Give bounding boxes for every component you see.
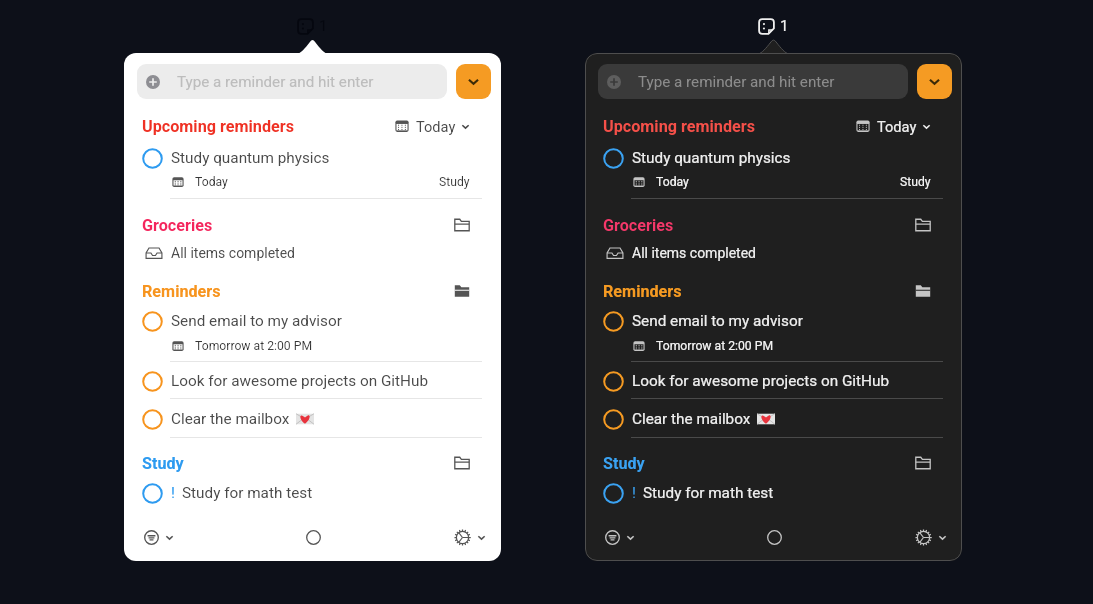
staticText: Today [656,175,689,189]
staticText: Today [877,118,917,135]
button[interactable]: Send email to my advisor [124,308,501,334]
staticText: Groceries [142,216,213,235]
button[interactable]: Show more options [917,64,952,99]
button[interactable]: Add reminder [300,524,326,550]
button[interactable]: Today [395,113,482,139]
button[interactable]: Study quantum physics [585,145,962,171]
staticText: Look for awesome projects on GitHub [171,372,428,390]
staticText: Send email to my advisor [171,312,342,330]
staticText: Reminders [142,282,221,301]
button[interactable]: Sort and filter [144,524,174,550]
staticText: Study [603,454,645,473]
staticText: 1 [780,17,789,35]
button[interactable]: Send email to my advisor [585,308,962,334]
button[interactable]: Clear the mailbox [124,406,501,432]
staticText: Send email to my advisor [632,312,803,330]
button[interactable]: Open Reminders list [448,278,476,304]
button[interactable]: Sort and filter [605,524,635,550]
staticText: Type a reminder and hit enter [177,73,374,91]
staticText: Study [900,175,931,189]
staticText: Study for math test [182,484,313,502]
button[interactable]: Type a reminder and hit enter [598,64,908,99]
button[interactable]: Open Groceries list [448,212,476,238]
staticText: Look for awesome projects on GitHub [632,372,889,390]
staticText: Tomorrow at 2:00 PM [656,339,774,353]
button[interactable]: Open Study list [909,450,937,476]
button[interactable]: Today [856,113,943,139]
button[interactable]: Type a reminder and hit enter [137,64,447,99]
staticText: Study quantum physics [632,149,791,167]
staticText: Study [142,454,184,473]
staticText: ! [632,484,636,502]
staticText: Today [416,118,456,135]
staticText: Groceries [603,216,674,235]
staticText: Type a reminder and hit enter [638,73,835,91]
button[interactable]: Settings [454,524,486,550]
staticText: All items completed [632,245,756,261]
staticText: Clear the mailbox [171,410,290,428]
button[interactable]: Open Groceries list [909,212,937,238]
button[interactable]: Open Reminders list [909,278,937,304]
staticText: ! [171,484,175,502]
staticText: Study for math test [643,484,774,502]
button[interactable]: Settings [915,524,947,550]
staticText: Study quantum physics [171,149,330,167]
button[interactable]: Look for awesome projects on GitHub [585,368,962,394]
button[interactable]: Open Study list [448,450,476,476]
staticText: All items completed [171,245,295,261]
staticText: Upcoming reminders [603,117,755,136]
button[interactable]: Show more options [456,64,491,99]
button[interactable]: Add reminder [761,524,787,550]
staticText: Upcoming reminders [142,117,294,136]
button[interactable]: ! [585,480,962,506]
button[interactable]: ! [124,480,501,506]
staticText: Today [195,175,228,189]
button[interactable]: Look for awesome projects on GitHub [124,368,501,394]
staticText: Reminders [603,282,682,301]
button[interactable]: Reminders menu bar item [758,17,789,35]
button[interactable]: Study quantum physics [124,145,501,171]
staticText: Tomorrow at 2:00 PM [195,339,313,353]
button[interactable]: Reminders menu bar item [297,17,328,35]
button[interactable]: Clear the mailbox [585,406,962,432]
staticText: Clear the mailbox [632,410,751,428]
staticText: Study [439,175,470,189]
